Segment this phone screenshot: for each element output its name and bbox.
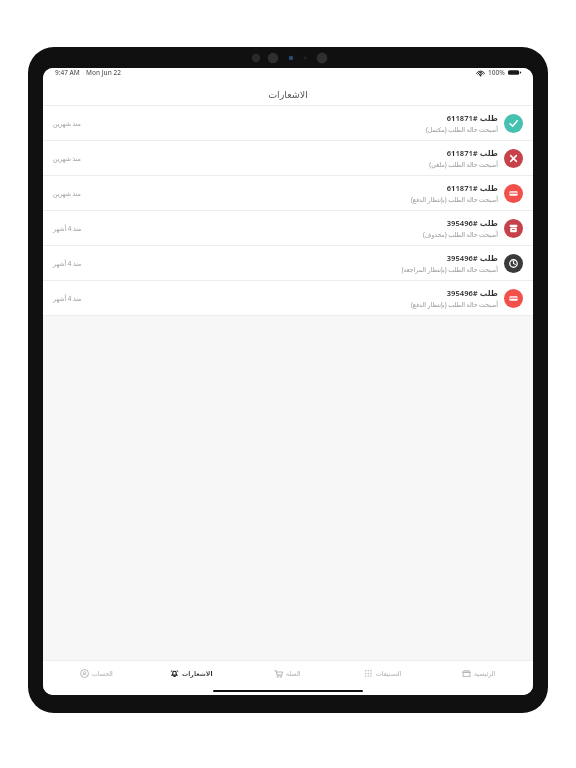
button[interactable]: التصنيفات — [335, 660, 431, 686]
staticText: منذ شهرين — [53, 189, 81, 197]
button[interactable]: منذ 4 أشهر — [43, 211, 533, 245]
staticText: أصبحت حالة الطلب (بإنتظار الدفع) — [410, 195, 498, 203]
button[interactable]: الرئيسية — [431, 660, 527, 686]
staticText: منذ شهرين — [53, 119, 81, 127]
staticText: منذ 4 أشهر — [53, 294, 82, 302]
button[interactable]: منذ 4 أشهر — [43, 246, 533, 280]
button[interactable]: الاشعارات — [144, 660, 239, 686]
staticText: أصبحت حالة الطلب (مكتمل) — [425, 125, 498, 133]
staticText: التصنيفات — [376, 670, 402, 677]
staticText: Mon Jun 22 — [86, 68, 121, 77]
staticText: الرئيسية — [474, 670, 496, 677]
staticText: طلب #611871 — [446, 113, 498, 123]
staticText: أصبحت حالة الطلب (بإنتظار الدفع) — [410, 300, 498, 308]
staticText: منذ 4 أشهر — [53, 224, 82, 232]
button[interactable]: منذ شهرين — [43, 176, 533, 210]
staticText: منذ 4 أشهر — [53, 259, 82, 267]
staticText: الاشعارات — [182, 670, 213, 677]
button[interactable]: الحساب — [49, 660, 144, 686]
button[interactable]: السلة — [239, 660, 335, 686]
staticText: 100% — [488, 68, 505, 77]
staticText: طلب #611871 — [446, 148, 498, 158]
staticText: طلب #611871 — [446, 183, 498, 193]
staticText: منذ شهرين — [53, 154, 81, 162]
button[interactable]: منذ 4 أشهر — [43, 281, 533, 315]
staticText: طلب #395496 — [446, 288, 498, 298]
staticText: الاشعارات — [268, 89, 308, 100]
staticText: 9:47 AM — [55, 68, 80, 77]
staticText: السلة — [286, 670, 301, 677]
staticText: أصبحت حالة الطلب (محذوف) — [422, 230, 498, 238]
staticText: طلب #395496 — [446, 218, 498, 228]
button[interactable]: منذ شهرين — [43, 141, 533, 175]
staticText: طلب #395496 — [446, 253, 498, 263]
staticText: الحساب — [92, 670, 113, 677]
staticText: أصبحت حالة الطلب (بإنتظار المراجعة) — [401, 265, 498, 273]
button[interactable]: منذ شهرين — [43, 106, 533, 140]
staticText: أصبحت حالة الطلب (ملغي) — [429, 160, 498, 168]
